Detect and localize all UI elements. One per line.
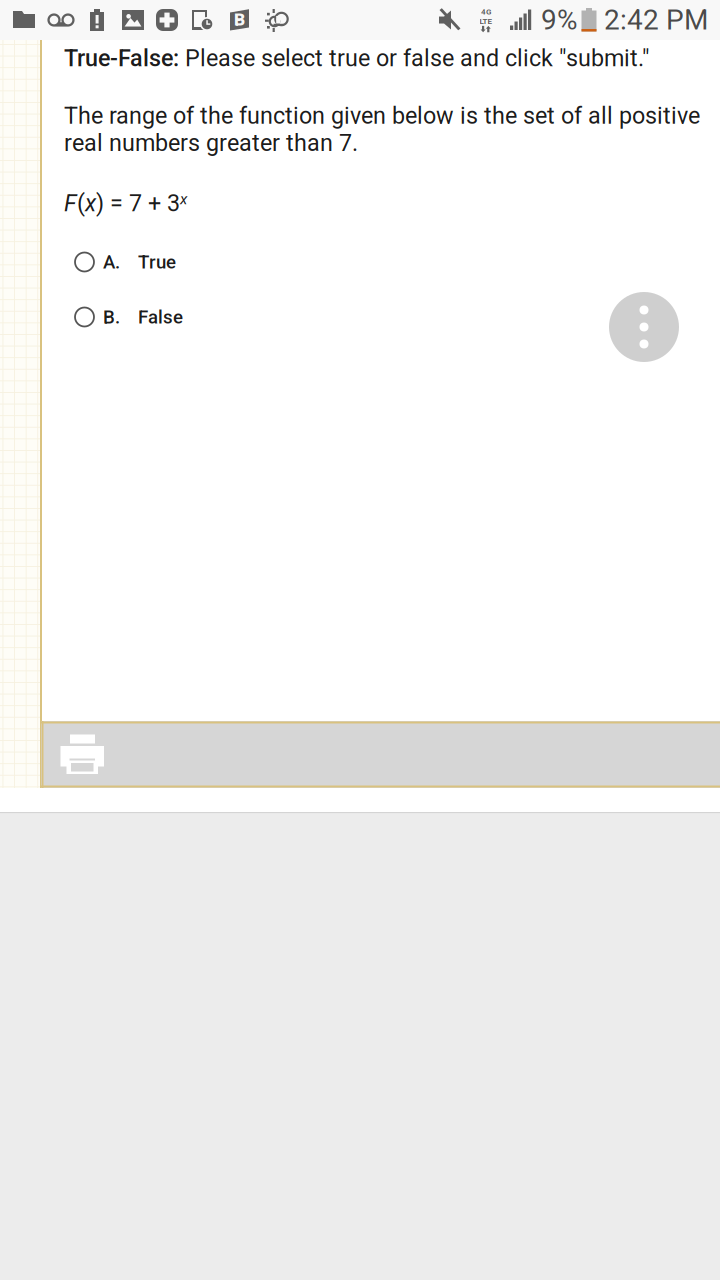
staticText: 2:42 PM — [604, 4, 708, 36]
button[interactable]: A. — [64, 245, 384, 279]
staticText: B — [234, 9, 245, 30]
staticText: True-False: Please select true or false … — [64, 45, 649, 72]
staticText: A. — [103, 251, 120, 273]
staticText: B. — [103, 306, 120, 328]
staticText: F(x) = 7 + 3x — [64, 190, 187, 217]
staticText: The range of the function given below is… — [64, 102, 700, 157]
staticText: True — [138, 251, 176, 273]
button[interactable]: Print — [41, 721, 720, 788]
staticText: LTE — [479, 16, 492, 26]
staticText: 9% — [541, 4, 578, 36]
button[interactable]: More options — [609, 292, 679, 362]
staticText: False — [138, 306, 183, 328]
staticText: 4G — [481, 7, 491, 16]
button[interactable]: B. — [64, 300, 384, 334]
